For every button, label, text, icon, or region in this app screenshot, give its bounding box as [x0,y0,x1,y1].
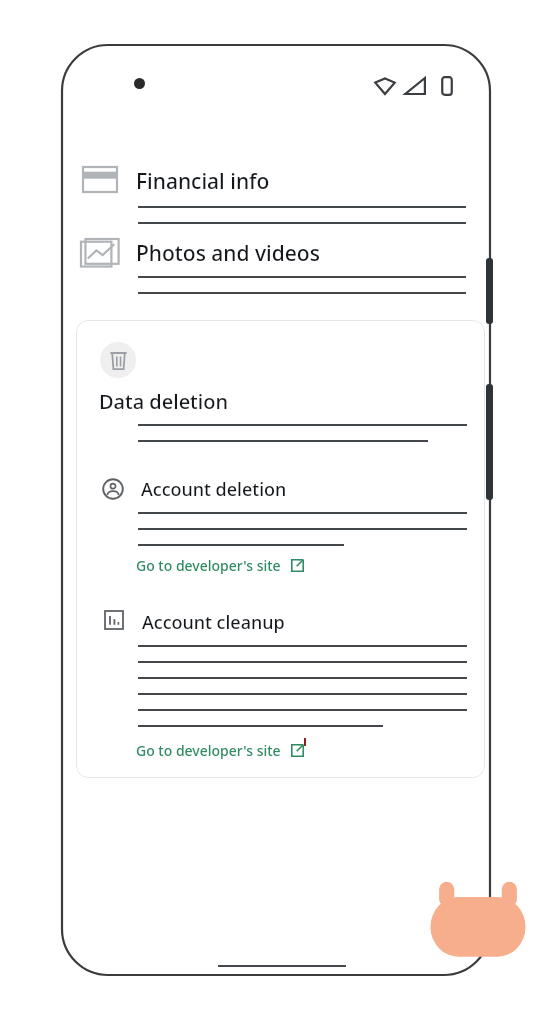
button[interactable] [76,320,485,778]
staticText: Photos and videos [136,239,320,268]
staticText: Go to developer's site [136,556,281,575]
button[interactable]: Go to developer's site [136,556,304,575]
staticText: Go to developer's site [136,741,281,760]
other: Open external link [291,744,304,757]
staticText: Account cleanup [142,610,285,635]
other: Wifi [374,76,396,96]
staticText: Financial info [136,167,270,196]
button[interactable]: Go to developer's site [136,741,304,760]
other: Delete [100,342,136,378]
staticText: Account deletion [141,477,287,502]
staticText: Data deletion [99,388,228,415]
other: Battery [440,75,454,97]
other: Open external link [291,559,304,572]
other: Signal [404,76,426,96]
